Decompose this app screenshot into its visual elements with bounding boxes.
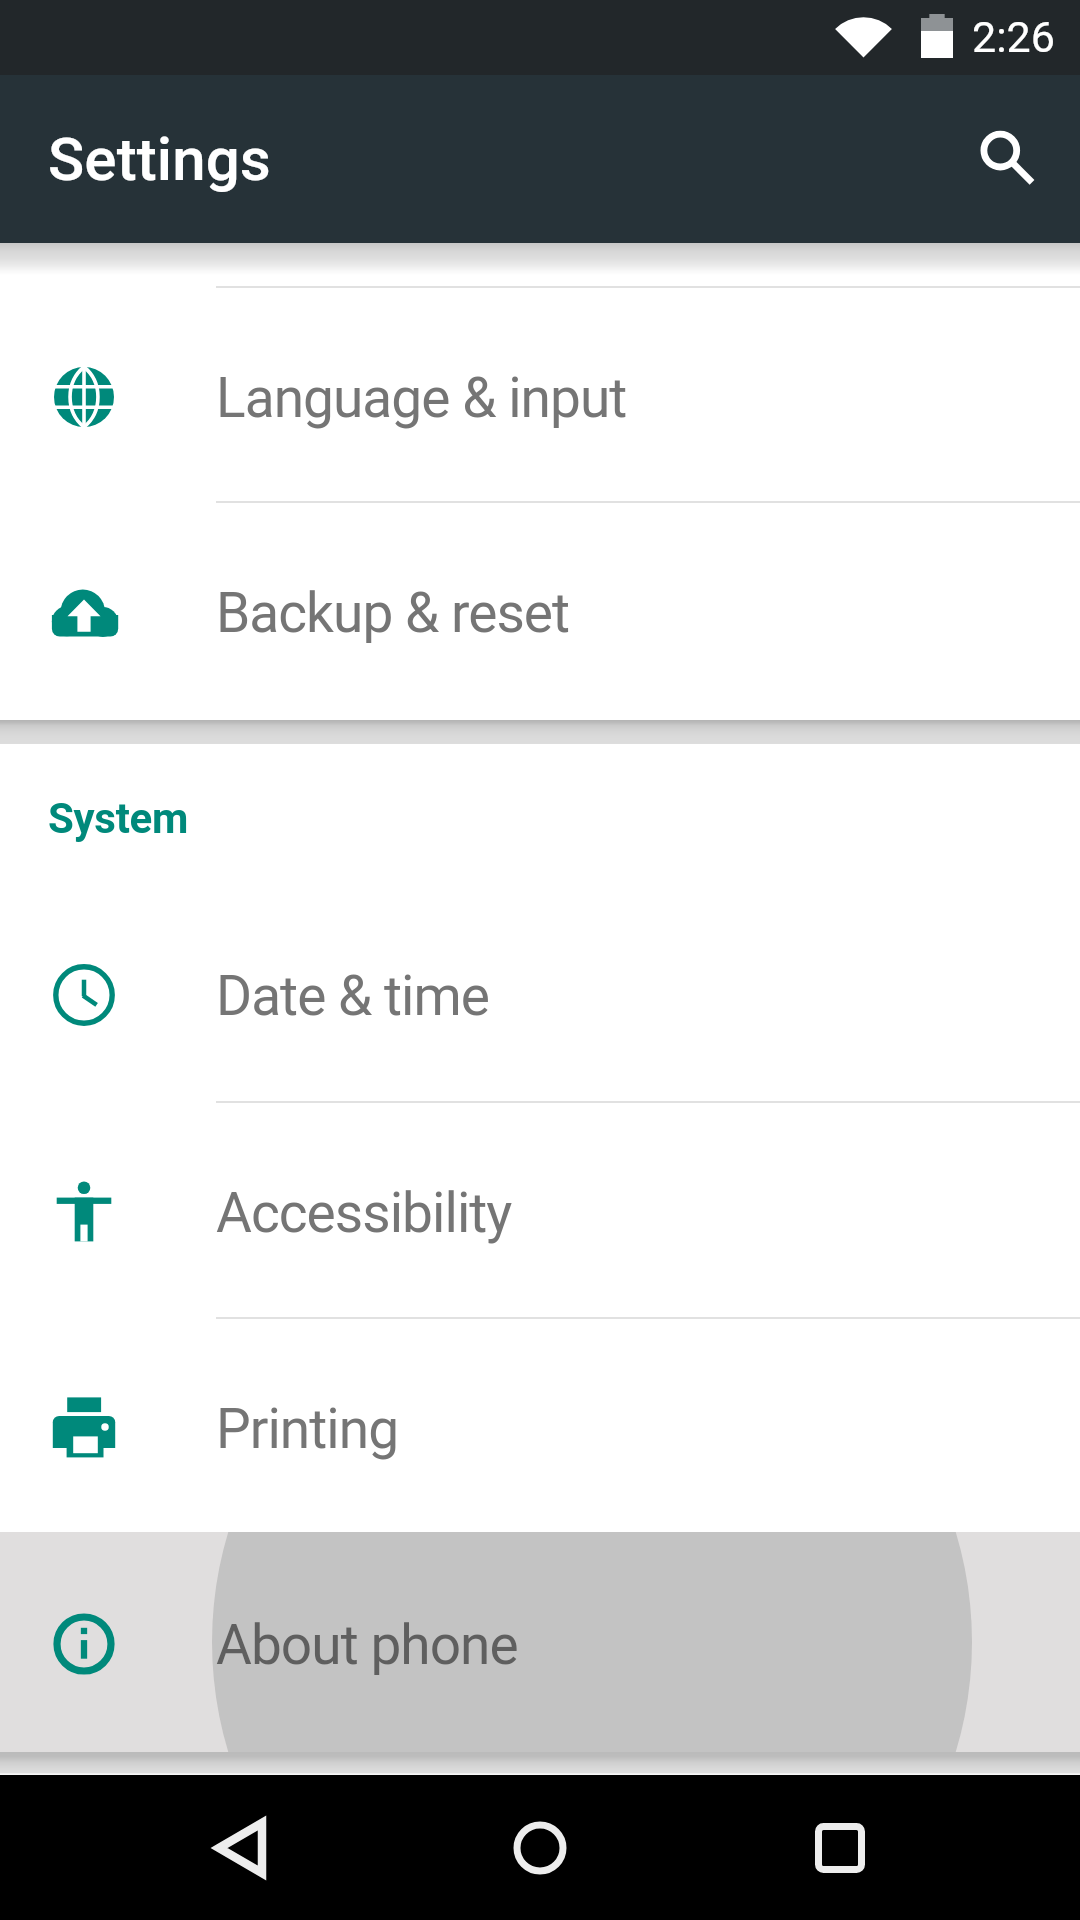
staticText: System [48, 794, 188, 843]
staticText: Accessibility [216, 1181, 512, 1245]
button[interactable]: Date & time [0, 885, 1080, 1101]
button[interactable]: Language & input [0, 288, 1080, 501]
button[interactable]: Home [490, 1798, 590, 1898]
staticText: Backup & reset [216, 581, 570, 645]
button[interactable]: Search [951, 113, 1061, 223]
button[interactable]: Backup & reset [0, 503, 1080, 716]
button[interactable]: Back [190, 1798, 290, 1898]
button[interactable]: Accessibility [0, 1103, 1080, 1317]
button[interactable]: Recents [790, 1798, 890, 1898]
staticText: Printing [216, 1397, 399, 1461]
staticText: Language & input [216, 366, 627, 430]
staticText: Date & time [216, 964, 489, 1028]
staticText: About phone [216, 1613, 518, 1677]
staticText: 2:26 [972, 12, 1055, 62]
staticText: Settings [48, 124, 271, 194]
button[interactable]: Printing [0, 1319, 1080, 1532]
button[interactable]: About phone [0, 1532, 1080, 1752]
